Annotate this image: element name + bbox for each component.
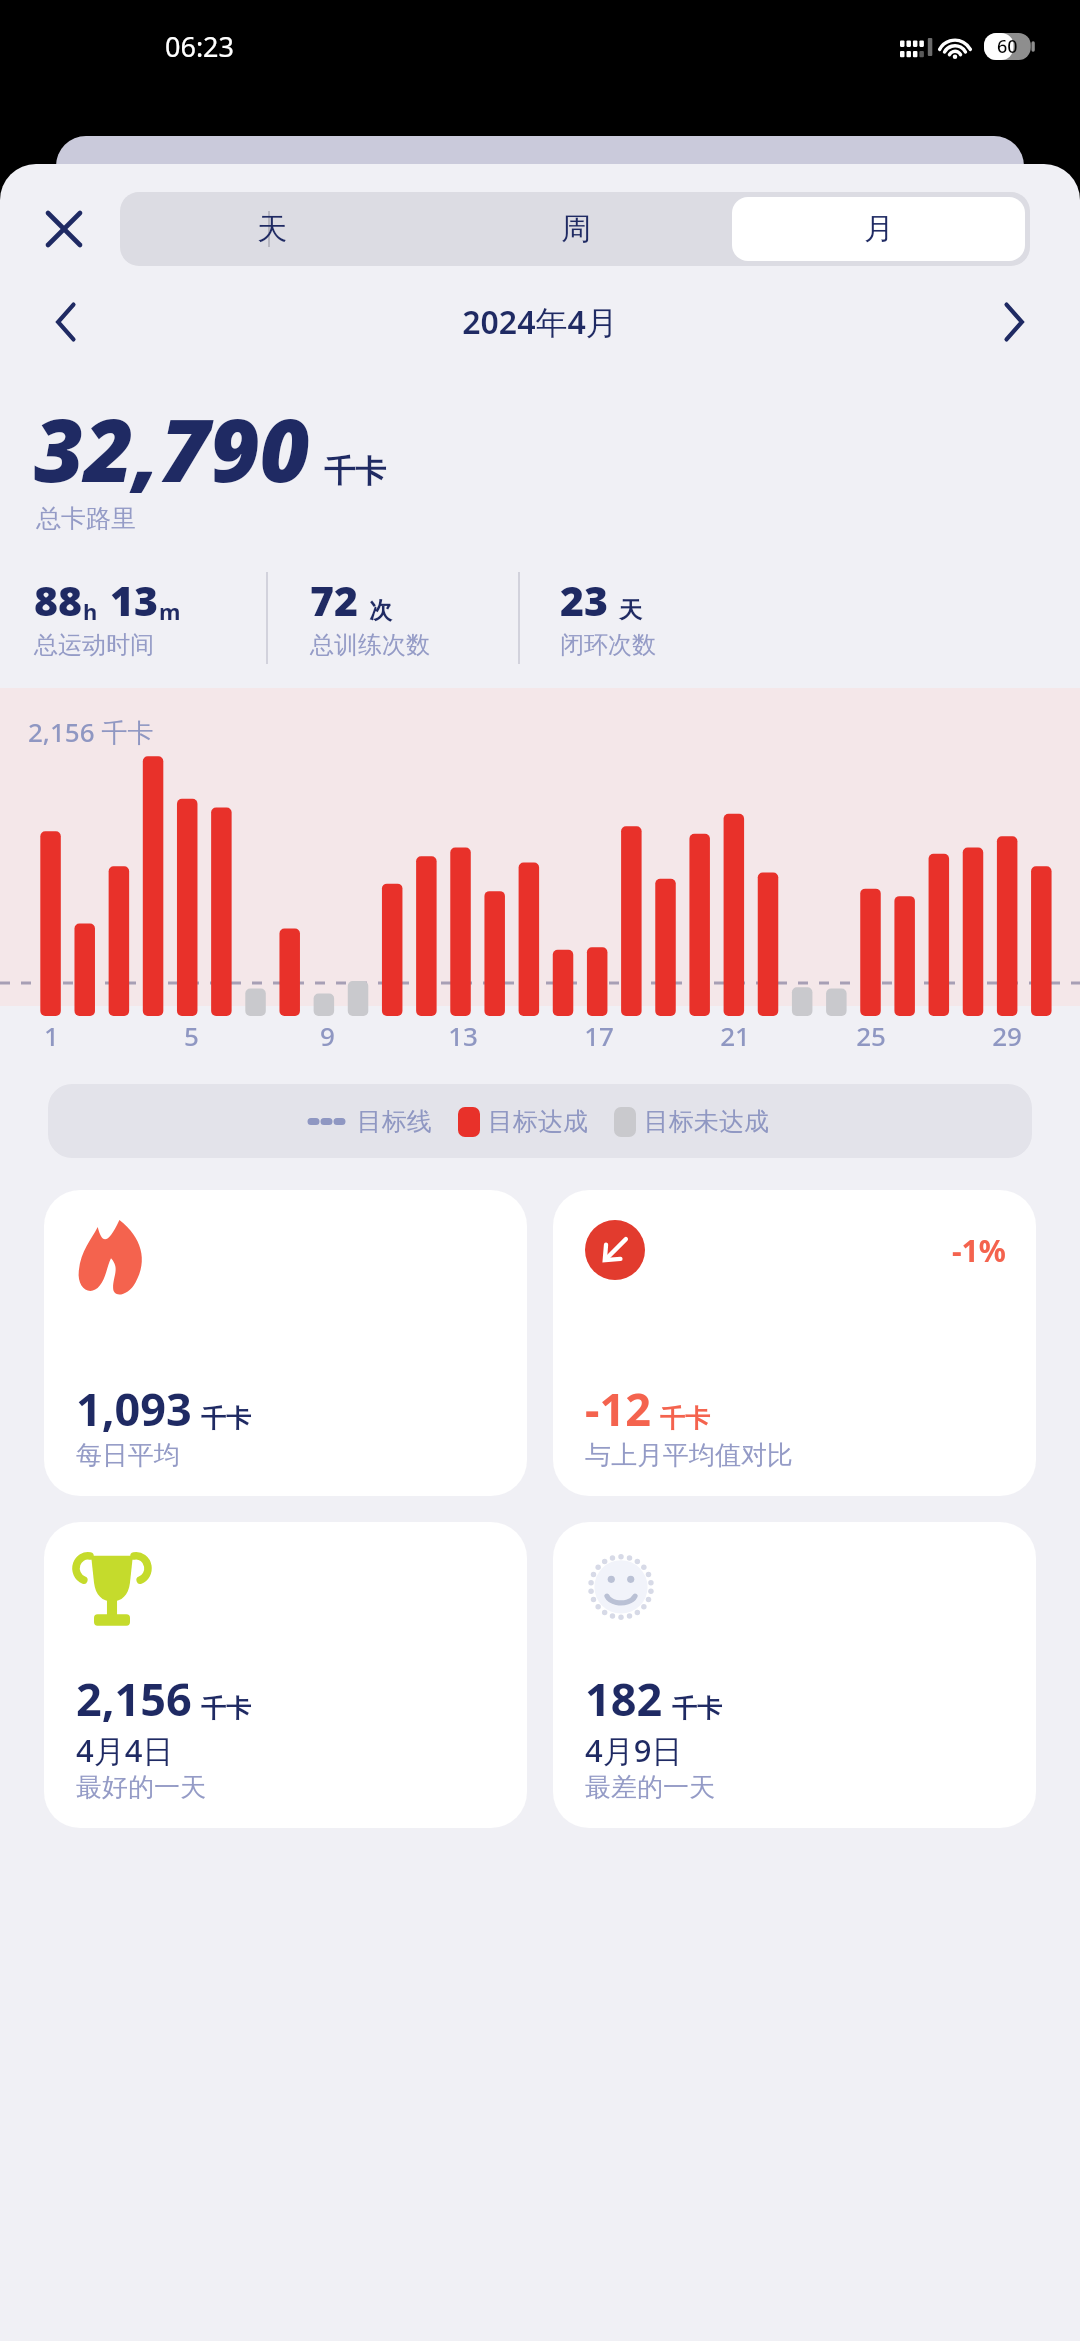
staticText: 5 xyxy=(184,1018,199,1053)
staticText: 4月4日 xyxy=(76,1729,174,1771)
staticText: 目标未达成 xyxy=(644,1106,769,1137)
staticText: 60 xyxy=(997,34,1018,59)
staticText: 21 xyxy=(720,1018,750,1053)
staticText: 29 xyxy=(992,1018,1022,1053)
staticText: 千卡 xyxy=(672,1693,722,1724)
button[interactable]: Close xyxy=(34,199,94,259)
button[interactable]: Worst day xyxy=(553,1522,1036,1828)
staticText: 32,790 xyxy=(34,390,310,507)
staticText: h xyxy=(83,596,98,626)
staticText: 17 xyxy=(584,1018,614,1053)
staticText: 次 xyxy=(369,596,392,625)
button[interactable]: Next month xyxy=(984,292,1044,352)
button[interactable]: 周 xyxy=(429,197,722,261)
button[interactable]: 月 xyxy=(732,197,1025,261)
staticText: 天 xyxy=(257,210,287,248)
staticText: 13 xyxy=(110,572,159,628)
staticText: 千卡 xyxy=(660,1403,710,1434)
button[interactable]: -1% xyxy=(553,1190,1036,1496)
other: Best day xyxy=(76,1552,148,1628)
staticText: -12 xyxy=(585,1378,651,1439)
staticText: -1% xyxy=(952,1230,1006,1271)
staticText: 1,093 xyxy=(76,1378,192,1439)
other: Calories xyxy=(76,1220,146,1298)
staticText: 闭环次数 xyxy=(560,630,656,660)
staticText: 2024年4月 xyxy=(96,300,984,344)
staticText: 与上月平均值对比 xyxy=(585,1439,793,1472)
staticText: 2,156 xyxy=(76,1668,192,1729)
staticText: 72 xyxy=(310,572,359,628)
staticText: 周 xyxy=(561,210,591,248)
staticText: 88 xyxy=(34,572,83,628)
staticText: m xyxy=(159,596,181,626)
button[interactable]: Previous month xyxy=(36,292,96,352)
staticText: 2,156 千卡 xyxy=(28,714,154,750)
staticText: 23 xyxy=(560,572,609,628)
button[interactable]: Calories xyxy=(44,1190,527,1496)
button[interactable]: 天 xyxy=(125,197,419,261)
staticText: 25 xyxy=(856,1018,886,1053)
staticText: 最差的一天 xyxy=(585,1771,715,1804)
staticText: 目标线 xyxy=(357,1106,432,1137)
staticText: 每日平均 xyxy=(76,1439,180,1472)
staticText: 月 xyxy=(864,210,894,248)
staticText: 1 xyxy=(44,1018,59,1053)
staticText: 千卡 xyxy=(324,452,386,491)
other: Worst day xyxy=(585,1552,657,1628)
staticText: 总训练次数 xyxy=(310,630,430,660)
staticText: 13 xyxy=(448,1018,478,1053)
staticText: 最好的一天 xyxy=(76,1771,206,1804)
staticText: 06:23 xyxy=(165,28,235,65)
staticText: 182 xyxy=(585,1668,663,1729)
staticText: 目标达成 xyxy=(488,1106,588,1137)
staticText: 总卡路里 xyxy=(36,503,136,534)
staticText: 9 xyxy=(320,1018,335,1053)
staticText: 总运动时间 xyxy=(34,630,154,660)
staticText: 千卡 xyxy=(201,1693,251,1724)
staticText: 天 xyxy=(619,596,642,625)
staticText: 千卡 xyxy=(201,1403,251,1434)
button[interactable]: Best day xyxy=(44,1522,527,1828)
staticText: 4月9日 xyxy=(585,1729,683,1771)
